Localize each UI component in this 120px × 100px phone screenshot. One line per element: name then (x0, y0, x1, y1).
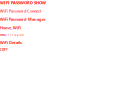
staticText: WiFi Password Connect (0, 8, 41, 14)
staticText: WiFi Details (0, 40, 22, 45)
staticText: WiFi Password Manager (0, 17, 46, 22)
staticText: WPA2 / 11:22:33 (0, 33, 24, 37)
staticText: WIFI PASSWORD SHOW (0, 0, 46, 5)
staticText: Home_WiFi (0, 25, 21, 30)
staticText: COPY (0, 48, 8, 52)
